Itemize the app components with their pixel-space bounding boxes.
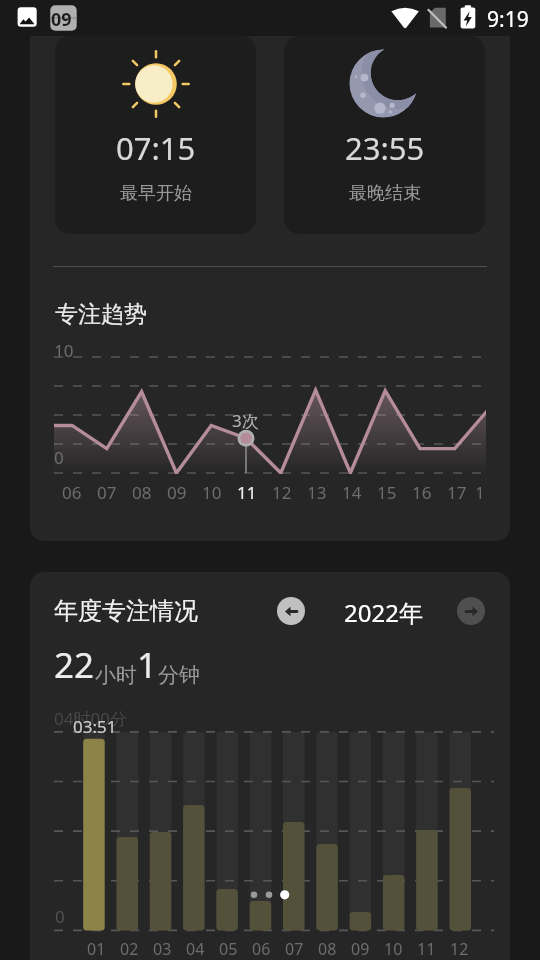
staticText: 06 xyxy=(62,481,82,504)
staticText: 07 xyxy=(285,938,304,960)
staticText: 22 xyxy=(54,641,95,689)
staticText: 12 xyxy=(450,938,469,960)
staticText: 0 xyxy=(54,446,64,469)
staticText: 17 xyxy=(447,481,467,504)
staticText: 09 xyxy=(351,938,370,960)
staticText: 08 xyxy=(132,481,152,504)
staticText: 06 xyxy=(252,938,271,960)
staticText: 10 xyxy=(202,481,222,504)
staticText: 07 xyxy=(97,481,117,504)
staticText: 9:19 xyxy=(487,5,529,34)
staticText: 03 xyxy=(153,938,172,960)
button[interactable]: Next year xyxy=(457,597,485,625)
staticText: 14 xyxy=(342,481,362,504)
staticText: 专注趋势 xyxy=(55,300,147,329)
button[interactable]: 07:15 xyxy=(55,36,256,234)
staticText: 01 xyxy=(87,938,106,960)
staticText: 分钟 xyxy=(158,662,200,688)
staticText: 11 xyxy=(417,938,436,960)
staticText: 年度专注情况 xyxy=(54,596,198,626)
staticText: 07:15 xyxy=(116,127,196,169)
staticText: 09 xyxy=(167,481,187,504)
staticText: 2022年 xyxy=(344,596,423,629)
staticText: 04 xyxy=(186,938,205,960)
staticText: 小时 xyxy=(95,662,137,688)
staticText: 最晚结束 xyxy=(349,182,421,205)
staticText: 05 xyxy=(219,938,238,960)
staticText: 16 xyxy=(412,481,432,504)
staticText: 1 xyxy=(137,641,158,689)
staticText: 13 xyxy=(307,481,327,504)
staticText: 03:51 xyxy=(73,715,117,738)
staticText: 11 xyxy=(237,481,257,504)
staticText: 04时00分 xyxy=(54,707,127,730)
button[interactable]: 23:55 xyxy=(284,36,485,234)
staticText: 最早开始 xyxy=(120,182,192,205)
staticText: 23:55 xyxy=(345,127,425,169)
staticText: 10 xyxy=(384,938,403,960)
staticText: 02 xyxy=(120,938,139,960)
button[interactable]: Previous year xyxy=(277,597,305,625)
staticText: 10 xyxy=(54,339,74,362)
staticText: 3次 xyxy=(232,409,259,432)
staticText: 0 xyxy=(55,905,65,928)
staticText: 09 xyxy=(51,7,72,32)
staticText: 08 xyxy=(318,938,337,960)
staticText: 15 xyxy=(377,481,397,504)
staticText: 12 xyxy=(272,481,292,504)
staticText: 1 xyxy=(475,481,485,504)
